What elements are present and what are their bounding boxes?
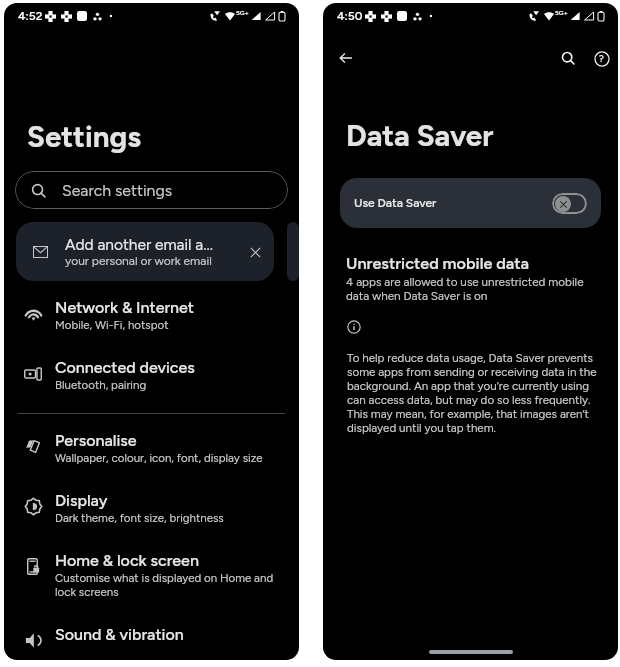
staticText: ?	[599, 53, 604, 64]
staticText: your personal or work email	[65, 254, 212, 268]
button[interactable]: Network & Internet	[4, 287, 299, 347]
staticText: 4 apps are allowed to use unrestricted m…	[346, 275, 600, 303]
staticText: Use Data Saver	[354, 196, 552, 210]
staticText: Personalise	[55, 431, 137, 450]
staticText: Wallpaper, colour, icon, font, display s…	[55, 451, 263, 465]
staticText: Bluetooth, pairing	[55, 378, 147, 392]
button[interactable]: Dismiss suggestion	[240, 237, 270, 267]
button[interactable]: Display	[4, 480, 299, 540]
staticText: Connected devices	[55, 358, 195, 377]
staticText: Add another email a...	[65, 235, 213, 254]
button[interactable]: Connected devices	[4, 347, 299, 407]
button[interactable]: Sound & vibration	[4, 614, 299, 660]
staticText: Data Saver	[346, 118, 494, 153]
button[interactable]: Home & lock screen	[4, 540, 299, 614]
button[interactable]	[287, 222, 299, 281]
button[interactable]: Add another email a...	[16, 222, 274, 281]
staticText: Mobile, Wi-Fi, hotspot	[55, 318, 169, 332]
staticText: Dark theme, font size, brightness	[55, 511, 224, 525]
staticText: Sound & vibration	[55, 625, 184, 644]
staticText: 4:50	[337, 9, 363, 23]
button[interactable]: Use Data Saver	[340, 178, 601, 228]
staticText: Display	[55, 491, 108, 510]
staticText: 5G+	[555, 9, 568, 17]
button[interactable]: Personalise	[4, 420, 299, 480]
button[interactable]: Search	[552, 42, 585, 75]
staticText: Settings	[27, 119, 141, 154]
staticText: To help reduce data usage, Data Saver pr…	[347, 351, 600, 435]
staticText: Home & lock screen	[55, 551, 199, 570]
button[interactable]: Search settings	[15, 171, 288, 209]
staticText: Customise what is displayed on Home and …	[55, 571, 279, 599]
staticText: Search settings	[62, 181, 173, 200]
staticText: 4:52	[18, 9, 43, 23]
staticText: Unrestricted mobile data	[346, 254, 530, 273]
staticText: Network & Internet	[55, 298, 195, 317]
button[interactable]: Help	[585, 42, 618, 75]
button[interactable]: Back	[329, 41, 363, 75]
staticText: 5G+	[236, 9, 249, 17]
